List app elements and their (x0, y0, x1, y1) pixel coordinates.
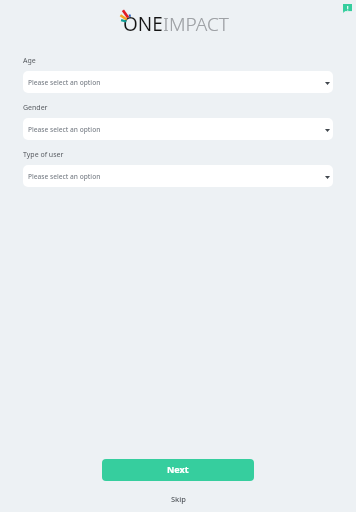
staticText: Type of user (23, 150, 64, 160)
staticText: Please select an option (28, 172, 101, 181)
button[interactable]: Skip (159, 491, 198, 507)
staticText: ONE (123, 11, 163, 37)
staticText: Please select an option (28, 125, 101, 134)
button[interactable]: Please select an option (23, 165, 333, 187)
staticText: Next (167, 463, 189, 475)
button[interactable]: Next (102, 459, 254, 481)
staticText: Gender (23, 103, 48, 113)
staticText: Skip (171, 494, 186, 504)
button[interactable]: Please select an option (23, 71, 333, 93)
staticText: IMPACT (163, 11, 229, 37)
button[interactable]: Feedback (343, 4, 352, 13)
staticText: Age (23, 56, 36, 66)
staticText: Please select an option (28, 78, 101, 87)
button[interactable]: Please select an option (23, 118, 333, 140)
